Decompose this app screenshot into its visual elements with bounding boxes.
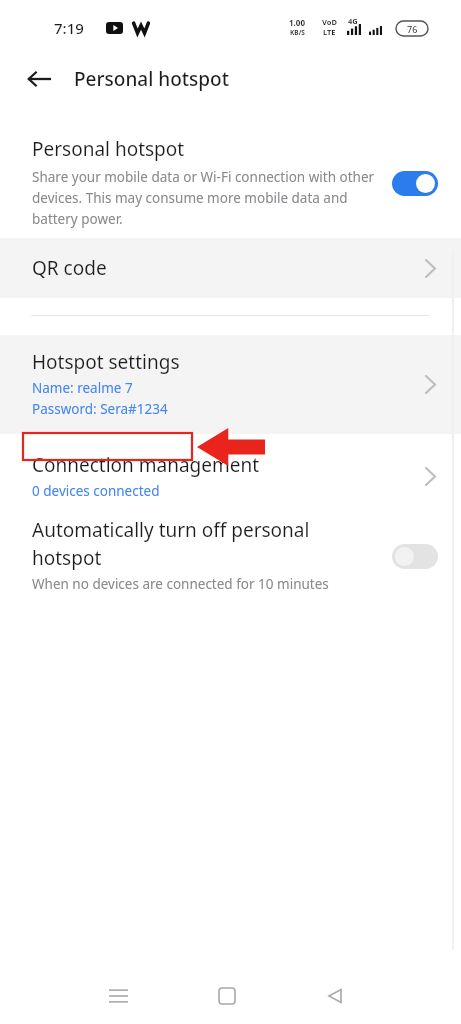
- staticText: LTE: [323, 27, 336, 37]
- button[interactable]: Hotspot settings: [0, 335, 461, 434]
- staticText: Password: Sera#1234: [32, 400, 168, 418]
- button[interactable]: Back: [311, 972, 359, 1020]
- staticText: Name: realme 7: [32, 379, 133, 397]
- staticText: Personal hotspot: [74, 66, 229, 92]
- button[interactable]: Back: [20, 60, 58, 98]
- staticText: Share your mobile data or Wi-Fi connecti…: [32, 168, 375, 228]
- staticText: 76: [407, 23, 418, 35]
- staticText: Automatically turn off personal hotspot: [32, 517, 375, 571]
- button[interactable]: Personal hotspot: [0, 136, 461, 228]
- staticText: 7:19: [54, 18, 84, 38]
- staticText: QR code: [32, 255, 425, 281]
- staticText: VoD: [322, 17, 337, 27]
- button[interactable]: Recents: [94, 972, 142, 1020]
- staticText: KB/S: [290, 28, 305, 37]
- staticText: 1.00: [289, 17, 305, 28]
- staticText: 4G: [348, 16, 358, 26]
- button[interactable]: Connection management: [0, 446, 461, 506]
- staticText: Connection management: [32, 452, 260, 478]
- staticText: Hotspot settings: [32, 349, 180, 375]
- button[interactable]: Automatically turn off hotspot toggle: [389, 539, 441, 573]
- button[interactable]: Automatically turn off personal hotspot: [0, 517, 461, 593]
- button[interactable]: Home: [203, 972, 251, 1020]
- staticText: Personal hotspot: [32, 136, 185, 162]
- button[interactable]: Personal hotspot toggle: [389, 166, 441, 200]
- button[interactable]: QR code: [0, 238, 461, 298]
- staticText: 0 devices connected: [32, 482, 160, 500]
- staticText: When no devices are connected for 10 min…: [32, 575, 329, 593]
